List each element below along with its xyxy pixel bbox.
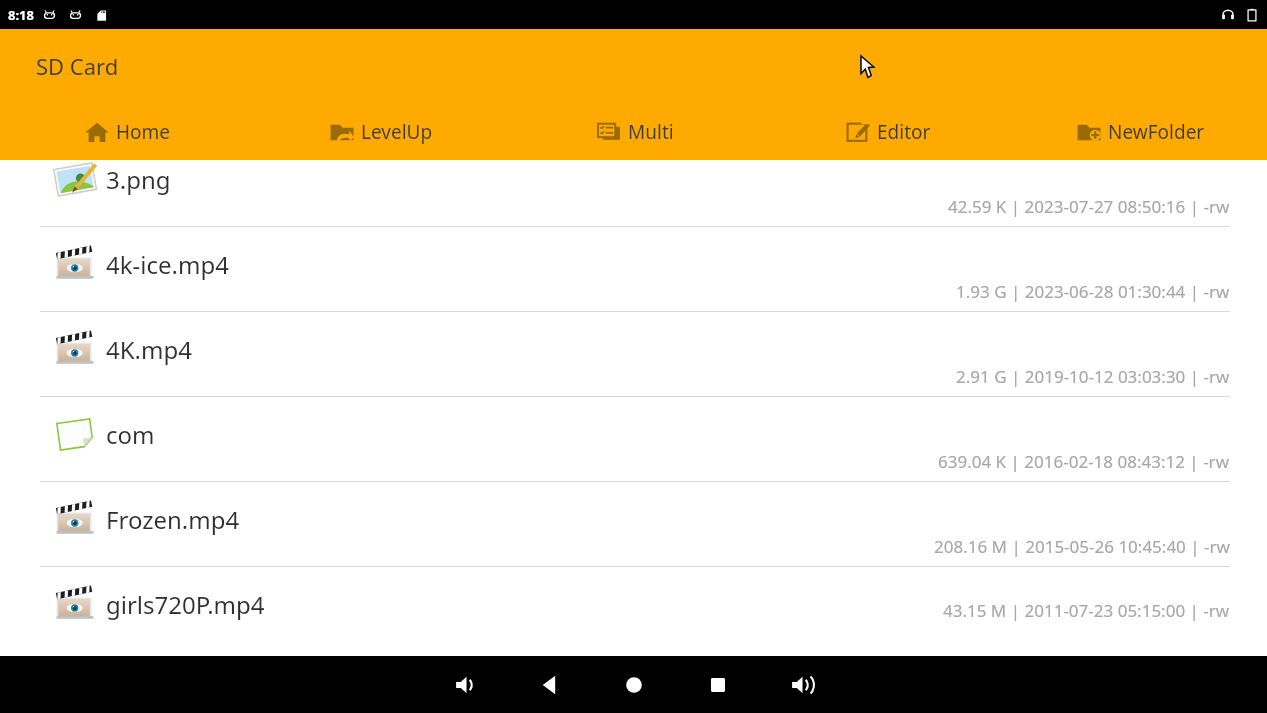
button[interactable]: Home: [0, 103, 254, 160]
staticText: SD Card: [36, 51, 119, 81]
button[interactable]: Editor: [761, 103, 1014, 160]
button[interactable]: 4k-ice.mp4: [0, 227, 1267, 312]
button[interactable]: LevelUp: [254, 103, 508, 160]
staticText: girls720P.mp4: [106, 588, 265, 621]
staticText: Home: [116, 119, 171, 145]
button[interactable]: Multi: [508, 103, 761, 160]
staticText: 4k-ice.mp4: [106, 248, 229, 281]
button[interactable]: Recents: [694, 661, 742, 709]
button[interactable]: girls720P.mp4: [0, 567, 1267, 630]
button[interactable]: 3.png: [0, 142, 1267, 227]
staticText: com: [106, 418, 155, 451]
button[interactable]: Frozen.mp4: [0, 482, 1267, 567]
staticText: 3.png: [106, 163, 171, 196]
staticText: Multi: [628, 119, 674, 145]
button[interactable]: Home: [610, 661, 658, 709]
staticText: NewFolder: [1108, 119, 1205, 145]
staticText: 2.91 G | 2019-10-12 03:03:30 | -rw: [956, 365, 1230, 388]
staticText: Editor: [877, 119, 931, 145]
button[interactable]: com: [0, 397, 1267, 482]
staticText: LevelUp: [361, 119, 433, 145]
staticText: 43.15 M | 2011-07-23 05:15:00 | -rw: [943, 599, 1230, 622]
staticText: 8:18: [8, 6, 34, 24]
staticText: 1.93 G | 2023-06-28 01:30:44 | -rw: [956, 280, 1230, 303]
button[interactable]: 4K.mp4: [0, 312, 1267, 397]
staticText: 208.16 M | 2015-05-26 10:45:40 | -rw: [934, 535, 1230, 558]
staticText: 42.59 K | 2023-07-27 08:50:16 | -rw: [948, 195, 1230, 218]
staticText: Frozen.mp4: [106, 503, 240, 536]
staticText: 4K.mp4: [106, 333, 192, 366]
button[interactable]: Back: [526, 661, 574, 709]
button[interactable]: NewFolder: [1014, 103, 1267, 160]
button[interactable]: Volume down: [442, 661, 490, 709]
staticText: 639.04 K | 2016-02-18 08:43:12 | -rw: [938, 450, 1230, 473]
button[interactable]: Volume up: [778, 661, 826, 709]
